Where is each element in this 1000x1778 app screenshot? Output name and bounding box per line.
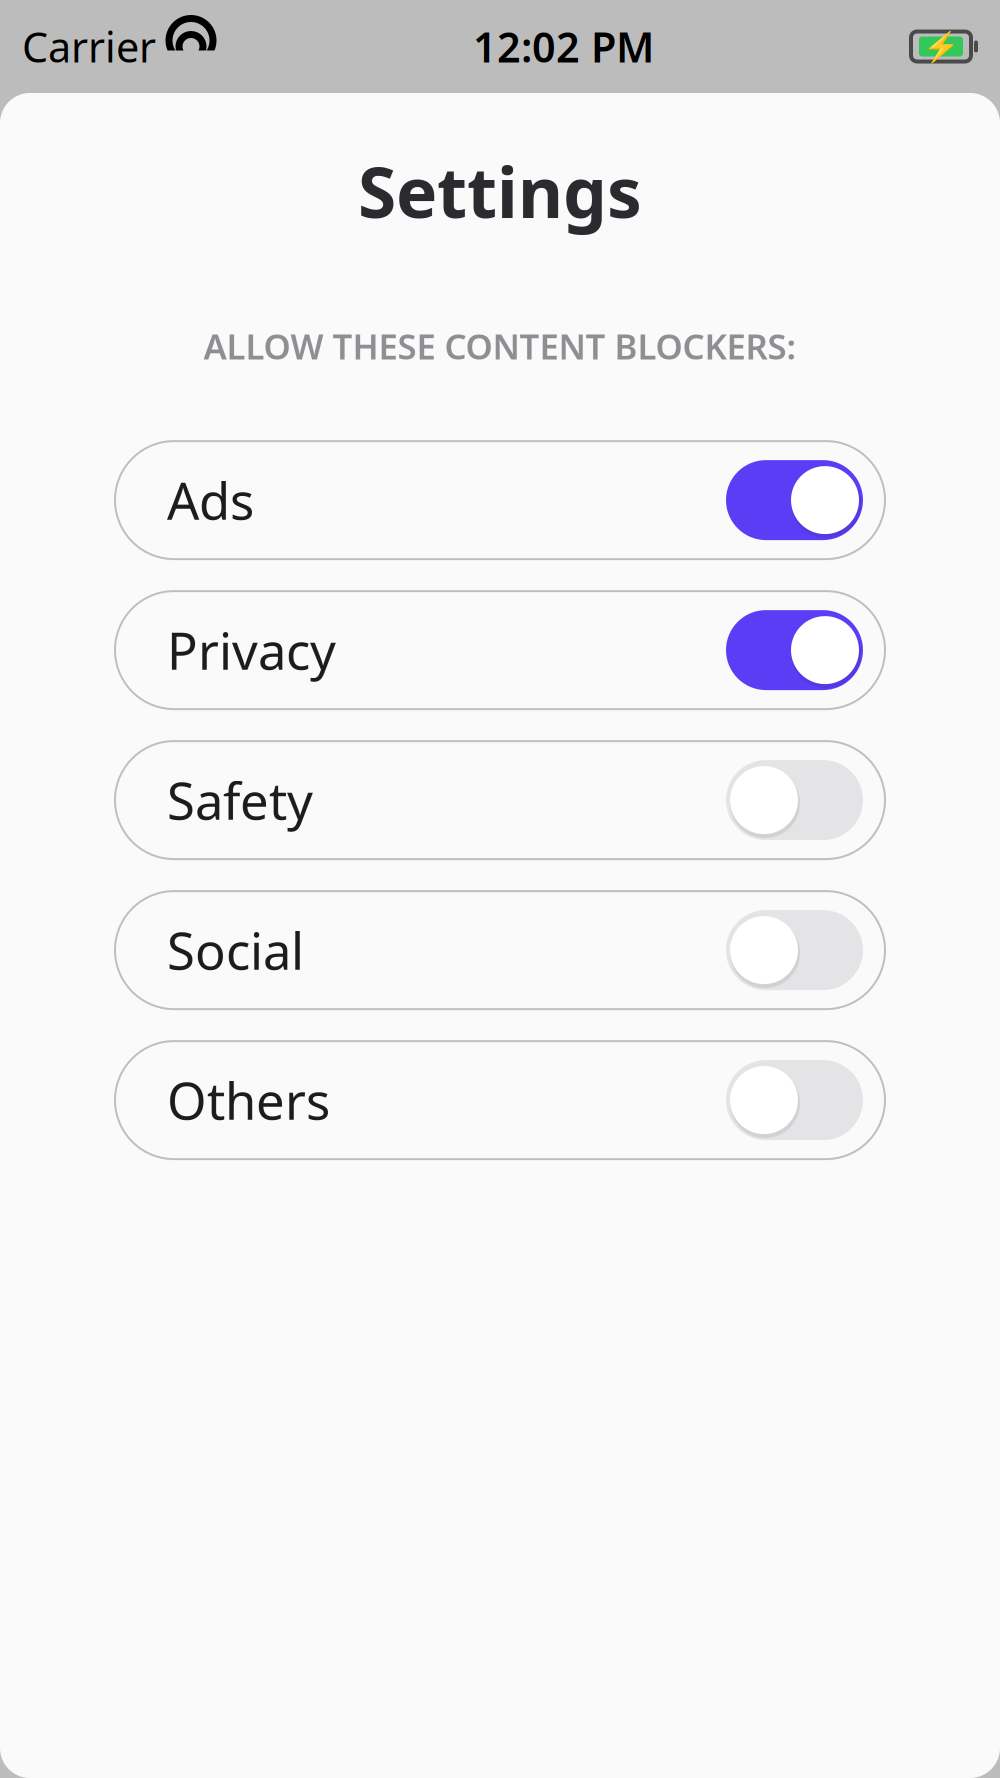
staticText: ALLOW THESE CONTENT BLOCKERS: [203, 323, 796, 369]
staticText: Ads [167, 466, 254, 534]
staticText: Others [167, 1066, 330, 1134]
button[interactable]: Others [115, 1041, 885, 1159]
button[interactable]: Safety [115, 741, 885, 859]
button[interactable]: Ads [115, 441, 885, 559]
staticText: Safety [167, 766, 313, 834]
staticText: 12:02 PM [473, 19, 654, 74]
staticText: Social [167, 916, 304, 984]
button[interactable]: Social [115, 891, 885, 1009]
staticText: Carrier [22, 19, 156, 74]
staticText: Privacy [167, 616, 336, 684]
button[interactable]: Privacy [115, 591, 885, 709]
staticText: Settings [358, 145, 642, 237]
staticText: ⚡ [922, 30, 959, 63]
